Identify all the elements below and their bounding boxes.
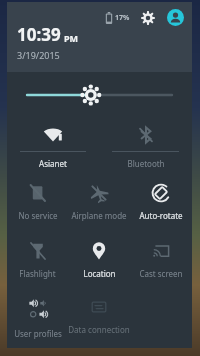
staticText: Bluetooth bbox=[127, 158, 165, 169]
staticText: 10:39 bbox=[17, 23, 61, 46]
staticText: Data connection bbox=[68, 324, 130, 335]
staticText: Auto-rotate bbox=[139, 210, 183, 221]
staticText: Asianet bbox=[39, 158, 67, 169]
button[interactable]: Data connection bbox=[68, 288, 130, 344]
staticText: User profiles bbox=[14, 328, 62, 339]
button[interactable]: Brightness bbox=[7, 72, 192, 118]
button[interactable]: Location bbox=[68, 232, 130, 288]
button[interactable]: Flashlight bbox=[7, 232, 68, 288]
staticText: Cast screen bbox=[139, 268, 183, 279]
button[interactable]: Settings bbox=[139, 9, 157, 27]
button[interactable]: Airplane mode bbox=[68, 174, 130, 232]
button[interactable]: Auto-rotate bbox=[130, 174, 192, 232]
button[interactable]: Asianet bbox=[7, 118, 99, 174]
staticText: Flashlight bbox=[19, 268, 56, 279]
button[interactable]: No service bbox=[7, 174, 68, 232]
staticText: PM bbox=[64, 32, 79, 44]
staticText: 17% bbox=[115, 13, 130, 23]
button[interactable]: User profile bbox=[166, 8, 185, 27]
button[interactable]: User profiles bbox=[7, 288, 68, 344]
staticText: Airplane mode bbox=[71, 210, 127, 221]
staticText: 3/19/2015 bbox=[17, 49, 60, 61]
button[interactable]: Bluetooth bbox=[99, 118, 192, 174]
staticText: Location bbox=[83, 268, 116, 279]
staticText: No service bbox=[18, 210, 58, 221]
button[interactable]: Cast screen bbox=[130, 232, 192, 288]
